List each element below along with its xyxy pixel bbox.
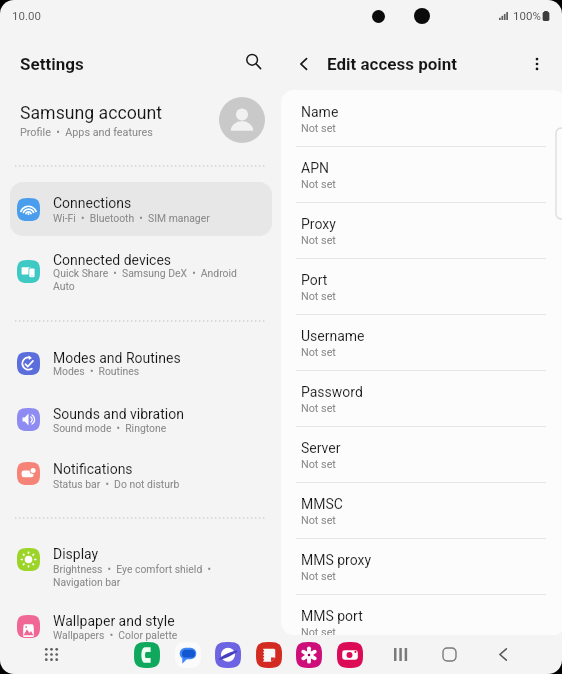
staticText: MMS proxy — [301, 552, 372, 568]
staticText: Proxy — [301, 216, 336, 232]
button[interactable]: Back — [287, 47, 320, 80]
staticText: Not set — [301, 178, 336, 191]
button[interactable] — [10, 343, 272, 385]
button[interactable]: Server — [281, 426, 562, 482]
staticText: APN — [301, 160, 329, 176]
staticText: Samsung account — [20, 103, 163, 124]
button[interactable]: Recents — [386, 640, 414, 668]
staticText: Server — [301, 440, 341, 456]
button[interactable]: Back — [489, 641, 516, 668]
staticText: 100% — [513, 9, 541, 22]
staticText: Settings — [20, 54, 84, 74]
staticText: Not set — [301, 514, 336, 527]
button[interactable]: Proxy — [281, 202, 562, 258]
button[interactable]: More options — [520, 47, 553, 80]
staticText: Wallpapers • Color palette — [53, 629, 303, 641]
button[interactable] — [10, 182, 272, 236]
button[interactable]: MMS proxy — [281, 538, 562, 594]
staticText: Not set — [301, 402, 336, 415]
staticText: MMSC — [301, 496, 343, 512]
staticText: Profile • Apps and features — [20, 126, 153, 139]
staticText: Not set — [301, 458, 336, 471]
button[interactable]: Search — [237, 45, 270, 78]
staticText: Not set — [301, 122, 336, 135]
staticText: Name — [301, 104, 339, 120]
staticText: Username — [301, 328, 365, 344]
staticText: Not set — [301, 626, 336, 635]
staticText: MMS port — [301, 608, 363, 624]
button[interactable]: MMSC — [281, 482, 562, 538]
button[interactable] — [10, 607, 272, 651]
button[interactable]: Password — [281, 370, 562, 426]
staticText: Status bar • Do not disturb — [53, 478, 303, 490]
staticText: Edit access point — [327, 54, 458, 74]
button[interactable]: Username — [281, 314, 562, 370]
button[interactable] — [10, 455, 272, 497]
button[interactable] — [10, 541, 272, 591]
button[interactable]: Gallery — [296, 642, 322, 668]
staticText: Quick Share • Samsung DeX • Android Auto — [53, 267, 245, 292]
staticText: Connections — [53, 195, 132, 211]
button[interactable]: Home — [436, 641, 463, 668]
button[interactable] — [10, 247, 272, 301]
button[interactable] — [10, 399, 272, 441]
staticText: Port — [301, 272, 328, 288]
staticText: Brightness • Eye comfort shield • Naviga… — [53, 563, 245, 588]
staticText: Modes and Routines — [53, 350, 181, 366]
staticText: Connected devices — [53, 252, 172, 268]
button[interactable]: Name — [281, 90, 562, 146]
button[interactable]: APN — [281, 146, 562, 202]
staticText: Wi-Fi • Bluetooth • SIM manager — [53, 212, 303, 224]
staticText: Sounds and vibration — [53, 406, 184, 422]
button[interactable]: Internet — [215, 642, 241, 668]
staticText: Display — [53, 546, 99, 562]
staticText: Modes • Routines — [53, 365, 303, 377]
button[interactable]: MMS port — [281, 594, 562, 635]
button[interactable]: Apps — [38, 641, 65, 668]
button[interactable]: Port — [281, 258, 562, 314]
button[interactable]: Camera — [337, 642, 363, 668]
staticText: Wallpaper and style — [53, 613, 175, 629]
staticText: Not set — [301, 570, 336, 583]
staticText: Not set — [301, 346, 336, 359]
button[interactable]: Phone — [134, 642, 160, 668]
staticText: 10.00 — [12, 9, 41, 22]
staticText: Password — [301, 384, 363, 400]
staticText: Sound mode • Ringtone — [53, 422, 303, 434]
button[interactable]: Messages — [175, 642, 201, 668]
staticText: Not set — [301, 234, 336, 247]
staticText: Not set — [301, 290, 336, 303]
button[interactable]: Samsung account — [0, 96, 281, 146]
button[interactable]: Notes — [256, 642, 282, 668]
staticText: Notifications — [53, 461, 133, 477]
